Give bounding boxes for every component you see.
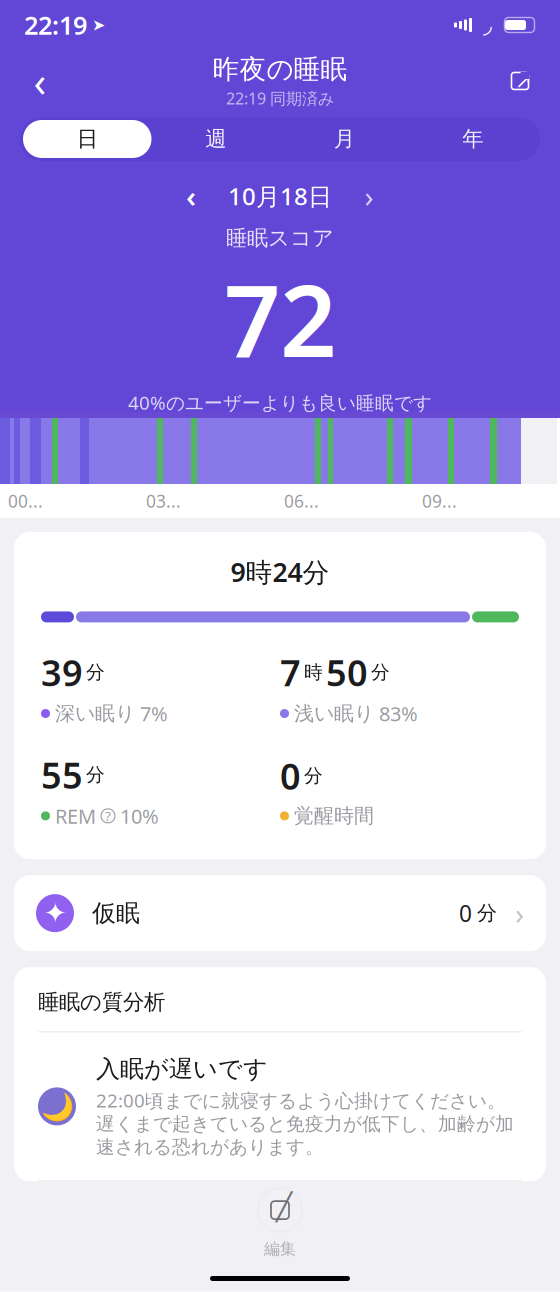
staticText: 10月18日 (228, 180, 332, 212)
staticText: ✦ (43, 897, 66, 929)
staticText: 年 (462, 126, 483, 152)
staticText: 分 (304, 764, 323, 787)
staticText: 7% (140, 700, 168, 727)
staticText: 50 (326, 648, 368, 696)
staticText: 22:19 (24, 8, 87, 42)
button[interactable]: 週 (151, 117, 280, 161)
staticText: 🌙 (40, 1091, 73, 1122)
staticText: 9時24分 (230, 554, 329, 589)
staticText: ‹ (33, 53, 46, 108)
staticText: ╱ (276, 1191, 292, 1222)
staticText: ↗ (515, 70, 532, 92)
staticText: 編集 (264, 1239, 296, 1259)
button[interactable]: 編集 (232, 1188, 328, 1259)
button[interactable]: ✦ (0, 875, 560, 951)
staticText: 日 (77, 126, 98, 152)
staticText: 睡眠スコア (226, 225, 334, 251)
staticText: ➤ (92, 16, 105, 34)
staticText: 分 (86, 763, 105, 786)
button[interactable]: 共有 (496, 57, 544, 105)
staticText: REM (55, 803, 96, 829)
staticText: 仮眠 (92, 898, 140, 928)
button[interactable]: 日 (23, 117, 151, 161)
button[interactable]: 年 (408, 117, 537, 161)
staticText: 09... (422, 489, 457, 512)
staticText: 深い眠り (55, 701, 135, 726)
staticText: 睡眠の質分析 (38, 989, 165, 1015)
button[interactable]: 前の日 (174, 179, 208, 213)
staticText: 昨夜の睡眠 (212, 53, 347, 86)
staticText: 覚醒時間 (294, 804, 374, 828)
staticText: 0 (280, 752, 301, 800)
staticText: › (364, 176, 373, 215)
staticText: 72 (224, 253, 336, 384)
staticText: ‹ (186, 176, 196, 215)
staticText: 40%のユーザーよりも良い睡眠です (128, 390, 432, 415)
staticText: 浅い眠り (294, 701, 374, 726)
staticText: ◞ (483, 12, 492, 38)
staticText: 時 (304, 661, 323, 684)
staticText: 00... (8, 489, 43, 512)
staticText: ? (105, 807, 111, 825)
staticText: 分 (477, 901, 497, 925)
staticText: 55 (41, 751, 83, 799)
staticText: 0 (459, 898, 472, 928)
staticText: 月 (334, 126, 355, 152)
staticText: 83% (379, 700, 418, 727)
staticText: 分 (86, 661, 105, 684)
staticText: 39 (41, 648, 83, 696)
staticText: 03... (146, 489, 181, 512)
button[interactable]: 🌙 (14, 1032, 546, 1180)
staticText: 入眠が遅いです (96, 1054, 268, 1084)
staticText: 週 (205, 126, 226, 152)
button[interactable]: 次の日 (352, 179, 386, 213)
button[interactable]: 戻る (16, 57, 64, 105)
staticText: 10% (120, 803, 159, 829)
staticText: › (515, 894, 524, 933)
staticText: 06... (284, 489, 319, 512)
staticText: 分 (371, 661, 390, 684)
button[interactable]: 月 (280, 117, 408, 161)
staticText: 22:00頃までに就寝するよう心掛けてください。遅くまで起きていると免疫力が低下… (96, 1088, 514, 1158)
staticText: 22:19 同期済み (226, 88, 334, 109)
staticText: 7 (280, 648, 301, 696)
